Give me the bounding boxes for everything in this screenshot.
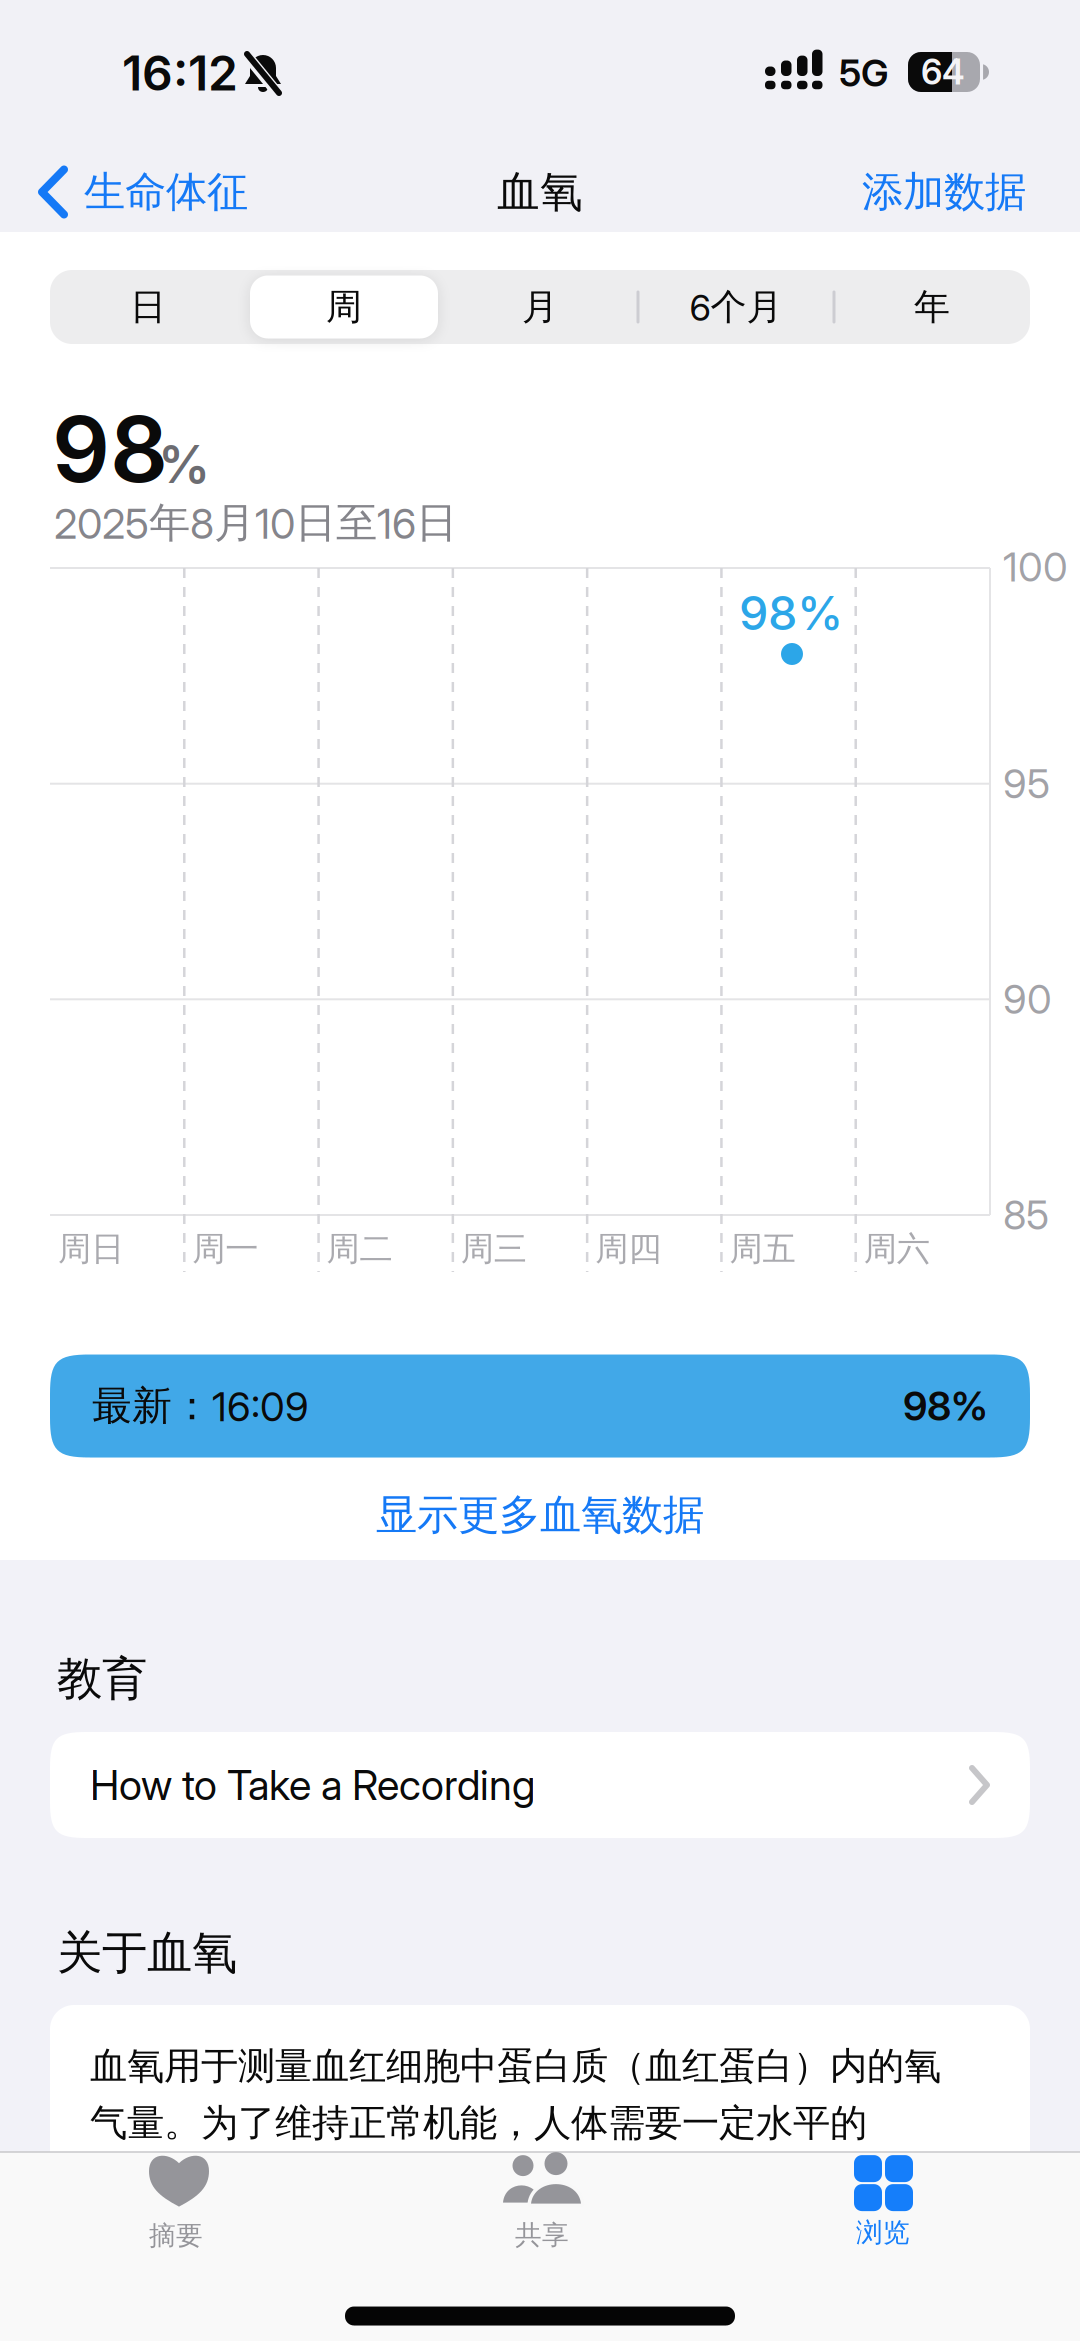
staticText: 95 <box>1003 760 1050 807</box>
staticText: 98% <box>739 585 843 641</box>
staticText: 年 <box>914 285 950 329</box>
button[interactable]: 显示更多血氧数据 <box>240 1480 840 1550</box>
staticText: 98% <box>903 1382 988 1430</box>
staticText: 气量。为了维持正常机能，人体需要一定水平的 <box>90 2100 867 2146</box>
button[interactable]: 浏览 <box>753 2136 1013 2266</box>
button[interactable]: 生命体征 <box>38 147 308 237</box>
staticText: 显示更多血氧数据 <box>376 1490 704 1540</box>
button[interactable]: 摘要 <box>46 2136 306 2266</box>
staticText: 周五 <box>729 1228 795 1269</box>
button[interactable]: 最新：16:09 <box>50 1354 1030 1457</box>
staticText: 最新：16:09 <box>92 1381 309 1430</box>
staticText: 2025年8月10日至16日 <box>54 498 457 548</box>
staticText: 100 <box>1003 543 1068 591</box>
staticText: 生命体征 <box>84 167 248 217</box>
staticText: 月 <box>522 285 558 329</box>
staticText: 周三 <box>461 1228 527 1269</box>
staticText: 64 <box>921 52 965 92</box>
staticText: % <box>158 433 210 495</box>
staticText: 摘要 <box>149 2219 203 2252</box>
button[interactable]: 共享 <box>412 2136 672 2266</box>
staticText: 6个月 <box>689 285 782 329</box>
staticText: 5G <box>839 51 889 95</box>
staticText: 血氧用于测量血红细胞中蛋白质（血红蛋白）内的氧 <box>90 2043 941 2089</box>
button[interactable]: How to Take a Recording <box>50 1732 1030 1838</box>
staticText: How to Take a Recording <box>90 1761 535 1809</box>
button[interactable]: 添加数据 <box>746 147 1026 237</box>
staticText: 日 <box>130 285 166 329</box>
staticText: 周二 <box>327 1228 393 1269</box>
staticText: 周一 <box>192 1228 258 1269</box>
staticText: 浏览 <box>856 2216 910 2249</box>
button[interactable]: 月 <box>444 270 636 344</box>
staticText: 共享 <box>515 2219 569 2251</box>
staticText: 添加数据 <box>862 167 1026 217</box>
staticText: 周日 <box>58 1228 124 1269</box>
staticText: 周 <box>326 285 362 329</box>
staticText: 90 <box>1003 976 1052 1023</box>
staticText: 周六 <box>864 1228 930 1269</box>
button[interactable]: 周 <box>248 270 440 344</box>
staticText: 教育 <box>57 1651 147 1707</box>
staticText: 关于血氧 <box>57 1925 237 1981</box>
staticText: 血氧 <box>497 166 583 218</box>
button[interactable]: 年 <box>836 270 1028 344</box>
staticText: 16:12 <box>122 45 238 101</box>
staticText: 85 <box>1003 1191 1049 1239</box>
staticText: 周四 <box>595 1228 661 1269</box>
staticText: 98 <box>52 395 168 502</box>
button[interactable]: 6个月 <box>640 270 832 344</box>
button[interactable]: 日 <box>52 270 244 344</box>
